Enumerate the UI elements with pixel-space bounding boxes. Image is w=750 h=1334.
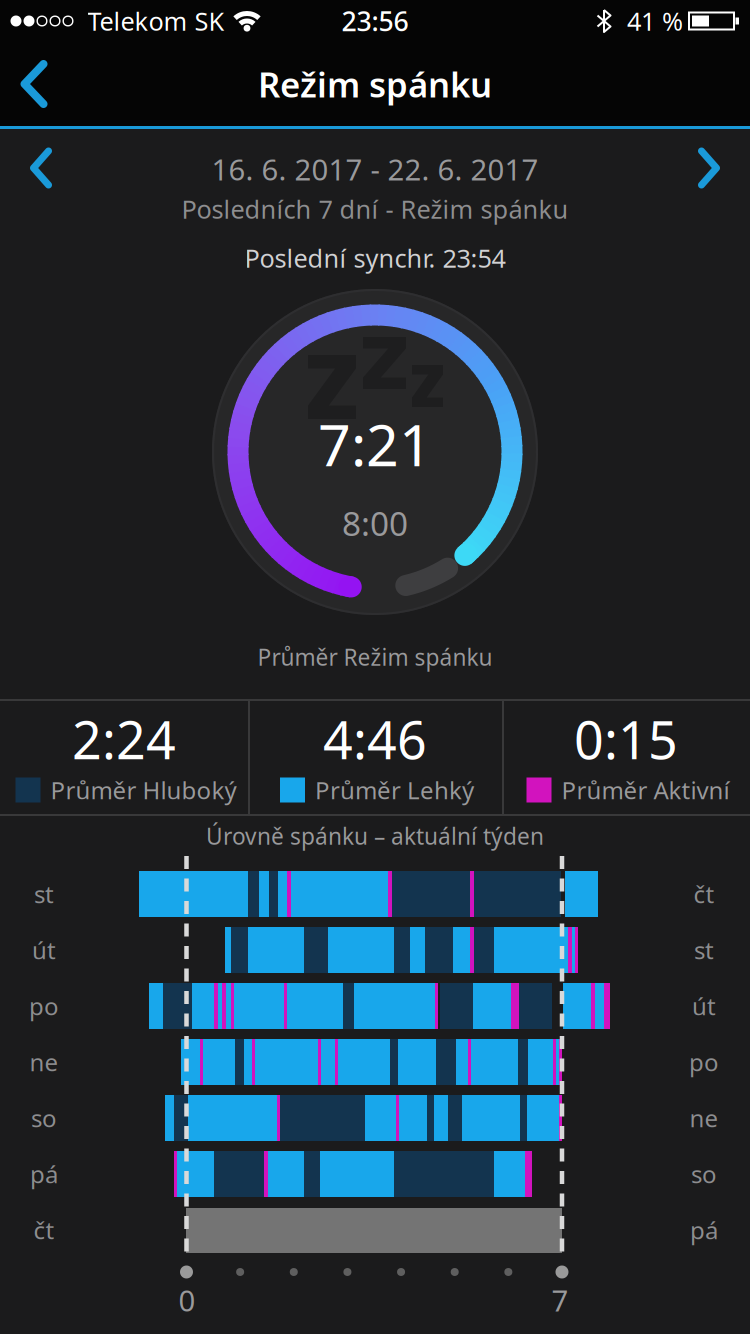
staticText: 7:21 [318,406,432,482]
staticText: 7 [551,1280,568,1319]
staticText: Telekom SK [87,4,224,38]
button[interactable]: Previous week [13,140,69,196]
staticText: Průměr Režim spánku [257,642,492,672]
staticText: so [31,1102,57,1134]
staticText: 2:24 [72,704,176,774]
staticText: Poslední synchr. 23:54 [244,241,505,275]
staticText: Úrovně spánku – aktuální týden [206,821,544,851]
staticText: út [692,990,716,1022]
staticText: čt [693,878,714,910]
staticText: 41 % [627,4,683,38]
staticText: Průměr Aktivní [561,774,729,806]
button[interactable]: Next week [681,140,737,196]
staticText: pá [30,1158,58,1190]
staticText: 23:56 [341,3,408,39]
staticText: út [32,934,56,966]
staticText: Posledních 7 dní - Režim spánku [181,192,568,226]
staticText: so [691,1158,717,1190]
staticText: 8:00 [342,501,408,545]
button[interactable]: Back [6,49,62,119]
staticText: Režim spánku [258,61,492,107]
staticText: ne [689,1102,718,1134]
staticText: pá [690,1214,718,1246]
staticText: po [689,1046,719,1078]
staticText: Průměr Lehký [315,774,474,806]
staticText: čt [33,1214,54,1246]
staticText: po [29,990,59,1022]
staticText: st [34,878,54,910]
staticText: 16. 6. 2017 - 22. 6. 2017 [211,149,538,188]
staticText: 4:46 [323,704,427,774]
staticText: 0:15 [574,704,678,774]
staticText: st [694,934,714,966]
staticText: 0 [178,1280,195,1319]
staticText: ne [29,1046,58,1078]
staticText: Průměr Hluboký [50,774,236,806]
